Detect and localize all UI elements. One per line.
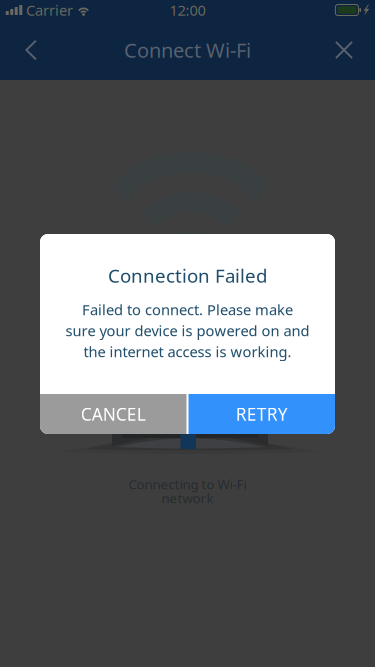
button[interactable]: Back (9, 28, 53, 72)
staticText: 12:00 (169, 0, 205, 20)
staticText: Connection Failed (108, 263, 267, 288)
staticText: the internet access is working. (83, 342, 291, 361)
staticText: sure your device is powered on and (65, 321, 309, 340)
button[interactable]: Close (322, 28, 366, 72)
staticText: Connecting to Wi-Fi (128, 475, 246, 493)
staticText: Carrier (26, 0, 73, 20)
staticText: network (161, 489, 213, 507)
button[interactable]: CANCEL (40, 394, 186, 434)
staticText: Connect Wi-Fi (124, 37, 251, 63)
staticText: RETRY (236, 402, 288, 425)
staticText: Failed to connect. Please make (82, 300, 293, 319)
button[interactable]: RETRY (188, 394, 335, 434)
staticText: CANCEL (81, 402, 146, 425)
